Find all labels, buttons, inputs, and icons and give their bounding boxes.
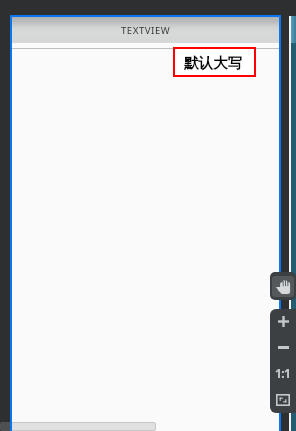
button[interactable]: Zoom in bbox=[270, 309, 296, 334]
button[interactable]: TEXTVIEW bbox=[12, 17, 279, 43]
button[interactable]: Actual size bbox=[270, 360, 296, 386]
button[interactable]: Zoom to fit bbox=[270, 386, 296, 413]
staticText: 默认大写 bbox=[184, 54, 242, 72]
button[interactable]: Zoom out bbox=[270, 334, 296, 360]
staticText: 1:1 bbox=[275, 365, 291, 381]
staticText: TEXTVIEW bbox=[121, 24, 171, 37]
button[interactable]: Pan tool bbox=[270, 272, 296, 300]
button[interactable]: 默认大写 bbox=[173, 47, 256, 77]
